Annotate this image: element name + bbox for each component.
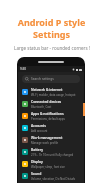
staticText: Work management (31, 135, 63, 140)
staticText: Android P style Settings (0, 16, 103, 40)
button[interactable]: Work management (18, 134, 84, 146)
button[interactable]: Battery (18, 146, 84, 158)
staticText: Manage work profile (31, 141, 59, 145)
staticText: Search settings (31, 77, 54, 81)
staticText: Volume, vibration, Do Not Disturb (31, 177, 76, 181)
staticText: Add account (31, 129, 48, 133)
staticText: Permissions, default apps (31, 117, 65, 121)
staticText: Apps & notifications (31, 111, 64, 116)
staticText: Battery (31, 147, 43, 152)
button[interactable]: Display (18, 158, 84, 170)
staticText: Wallpaper, sleep, font size (31, 165, 65, 169)
staticText: 9:30 (20, 67, 26, 71)
staticText: Display (31, 159, 43, 164)
staticText: Large status bar - rounded corners ! (14, 45, 90, 51)
button[interactable]: Sound (18, 170, 84, 182)
button[interactable]: Search settings (22, 75, 80, 83)
staticText: Sound (31, 171, 42, 176)
button[interactable]: Apps & notifications (18, 110, 84, 122)
button[interactable]: Accounts (18, 122, 84, 134)
staticText: Network & internet (31, 87, 63, 92)
staticText: Accounts (31, 123, 46, 128)
staticText: Connected devices (31, 99, 62, 104)
button[interactable]: Connected devices (18, 98, 84, 110)
staticText: Wi-Fi, mobile, data usage, hotspot (31, 93, 76, 97)
staticText: 21% - 1h 10m until fully charged (31, 153, 74, 157)
button[interactable]: Network & internet (18, 86, 84, 98)
staticText: Bluetooth, Cast (31, 105, 52, 109)
